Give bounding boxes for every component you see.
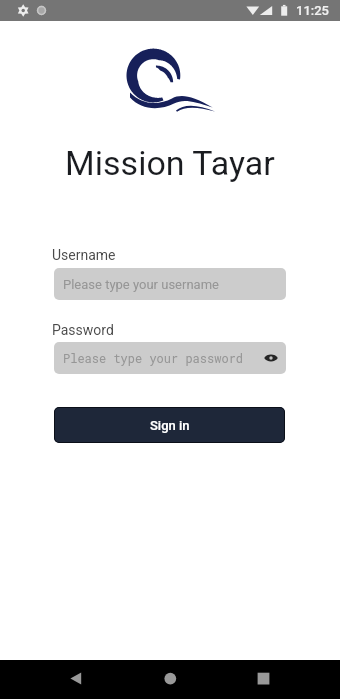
staticText: Please type your password	[63, 350, 244, 366]
button[interactable]: Sign in	[54, 407, 285, 443]
staticText: 11:25	[296, 3, 329, 18]
staticText: Please type your username	[63, 277, 219, 292]
button[interactable]: Please type your password	[54, 342, 286, 374]
staticText: Username	[52, 247, 116, 263]
staticText: Mission Tayar	[0, 143, 340, 183]
staticText: Password	[52, 322, 114, 338]
staticText: Sign in	[150, 418, 190, 433]
button[interactable]: Please type your username	[54, 268, 286, 300]
button[interactable]: Show password	[262, 349, 280, 367]
